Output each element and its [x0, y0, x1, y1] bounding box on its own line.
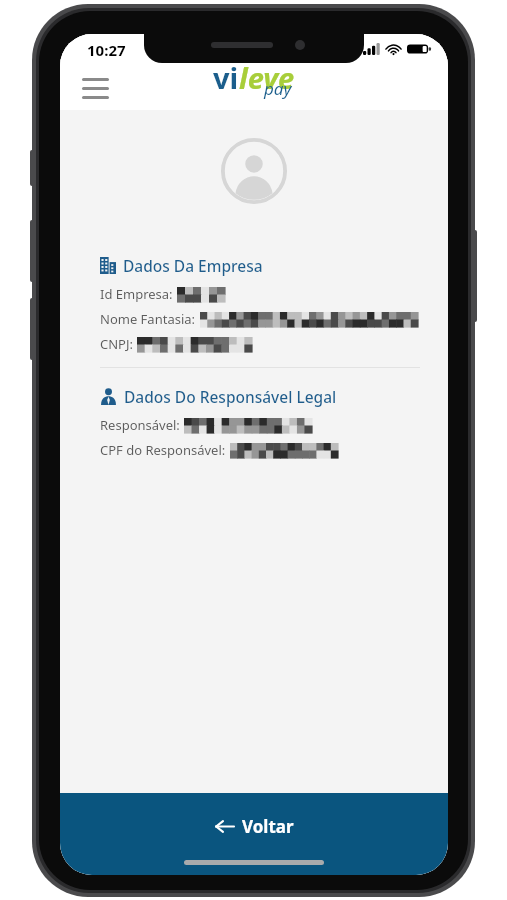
staticText: vi: [213, 58, 239, 97]
staticText: CNPJ:: [100, 335, 133, 353]
staticText: leve: [239, 58, 295, 97]
staticText: 10:27: [87, 40, 126, 60]
staticText: Dados Da Empresa: [123, 255, 263, 276]
staticText: Nome Fantasia:: [100, 310, 196, 328]
staticText: Voltar: [242, 815, 294, 838]
button[interactable]: Voltar: [60, 793, 448, 875]
staticText: CPF do Responsável:: [100, 441, 226, 459]
staticText: Id Empresa:: [100, 285, 173, 303]
staticText: Responsável:: [100, 416, 180, 434]
button[interactable]: Menu: [72, 70, 118, 106]
staticText: Dados Do Responsável Legal: [124, 386, 337, 407]
staticText: pay: [264, 77, 292, 100]
